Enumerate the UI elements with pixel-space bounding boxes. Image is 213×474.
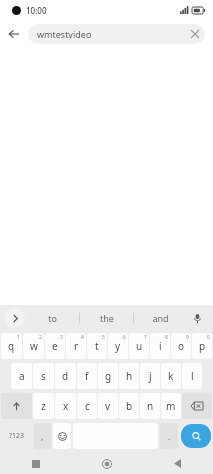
staticText: s	[41, 369, 46, 383]
button[interactable]: Shift	[1, 393, 32, 419]
button[interactable]: to	[25, 305, 79, 331]
staticText: 3	[60, 334, 63, 341]
staticText: p	[199, 339, 206, 353]
button[interactable]: r	[66, 333, 86, 359]
staticText: a	[19, 369, 25, 383]
button[interactable]: m	[161, 393, 181, 419]
button[interactable]: and	[134, 305, 187, 331]
staticText: to	[48, 312, 57, 324]
button[interactable]: z	[33, 393, 54, 419]
button[interactable]: ?123	[1, 423, 32, 449]
staticText: j	[149, 369, 152, 383]
staticText: h	[126, 369, 133, 383]
button[interactable]: ,	[34, 423, 51, 449]
button[interactable]: x	[55, 393, 76, 419]
staticText: n	[147, 399, 154, 413]
button[interactable]: Emoji	[53, 423, 71, 449]
button[interactable]: .	[160, 423, 178, 449]
button[interactable]: d	[55, 363, 76, 389]
staticText: y	[115, 339, 121, 353]
staticText: z	[41, 399, 46, 413]
staticText: m	[166, 399, 176, 413]
staticText: 0	[207, 334, 210, 341]
staticText: the	[100, 312, 114, 324]
staticText: i	[159, 339, 162, 353]
staticText: c	[85, 399, 90, 413]
button[interactable]: wmtestvideo	[28, 24, 205, 44]
staticText: d	[62, 369, 69, 383]
button[interactable]: w	[23, 333, 44, 359]
staticText: 2	[39, 334, 42, 341]
button[interactable]: g	[98, 363, 118, 389]
button[interactable]: Recents	[0, 453, 71, 474]
staticText: o	[178, 339, 185, 353]
staticText: 5	[102, 334, 105, 341]
button[interactable]: the	[80, 305, 133, 331]
staticText: 9	[186, 334, 189, 341]
button[interactable]: f	[77, 363, 97, 389]
staticText: 10:00	[26, 5, 47, 16]
button[interactable]: Home	[71, 453, 142, 474]
staticText: 7	[144, 334, 147, 341]
staticText: wmtestvideo	[37, 28, 92, 40]
staticText: e	[52, 339, 58, 353]
button[interactable]: p	[192, 333, 212, 359]
button[interactable]: o	[171, 333, 191, 359]
staticText: 6	[123, 334, 126, 341]
button[interactable]: y	[108, 333, 128, 359]
staticText: 4	[81, 334, 84, 341]
staticText: and	[152, 312, 169, 324]
button[interactable]: q	[1, 333, 22, 359]
button[interactable]: Voice input	[187, 308, 207, 328]
button[interactable]: v	[98, 393, 118, 419]
button[interactable]: Backspace	[182, 393, 212, 419]
staticText: 1	[17, 334, 20, 341]
button[interactable]: h	[119, 363, 139, 389]
button[interactable]: b	[119, 393, 139, 419]
staticText: ,	[41, 430, 44, 442]
button[interactable]: Clear	[185, 24, 205, 44]
staticText: x	[63, 399, 69, 413]
staticText: t	[95, 339, 99, 353]
staticText: ?123	[9, 431, 25, 441]
staticText: f	[85, 369, 89, 383]
staticText: .	[168, 430, 171, 442]
button[interactable]: k	[161, 363, 181, 389]
button[interactable]: e	[45, 333, 65, 359]
button[interactable]: n	[140, 393, 160, 419]
staticText: w	[30, 339, 38, 353]
button[interactable]: a	[11, 363, 32, 389]
button[interactable]: j	[140, 363, 160, 389]
staticText: u	[136, 339, 143, 353]
staticText: 8	[165, 334, 168, 341]
staticText: l	[191, 369, 194, 383]
button[interactable]: Search	[181, 424, 211, 448]
button[interactable]: More suggestions	[5, 308, 25, 328]
button[interactable]: c	[77, 393, 97, 419]
staticText: v	[105, 399, 111, 413]
button[interactable]: i	[150, 333, 170, 359]
button[interactable]: Back	[0, 20, 28, 48]
button[interactable]: t	[87, 333, 107, 359]
button[interactable]: u	[129, 333, 149, 359]
button[interactable]: Back	[142, 453, 213, 474]
staticText: q	[8, 339, 15, 353]
staticText: g	[105, 369, 112, 383]
staticText: b	[126, 399, 133, 413]
button[interactable]: s	[33, 363, 54, 389]
staticText: k	[168, 369, 174, 383]
staticText: r	[74, 339, 79, 353]
button[interactable]: l	[182, 363, 202, 389]
